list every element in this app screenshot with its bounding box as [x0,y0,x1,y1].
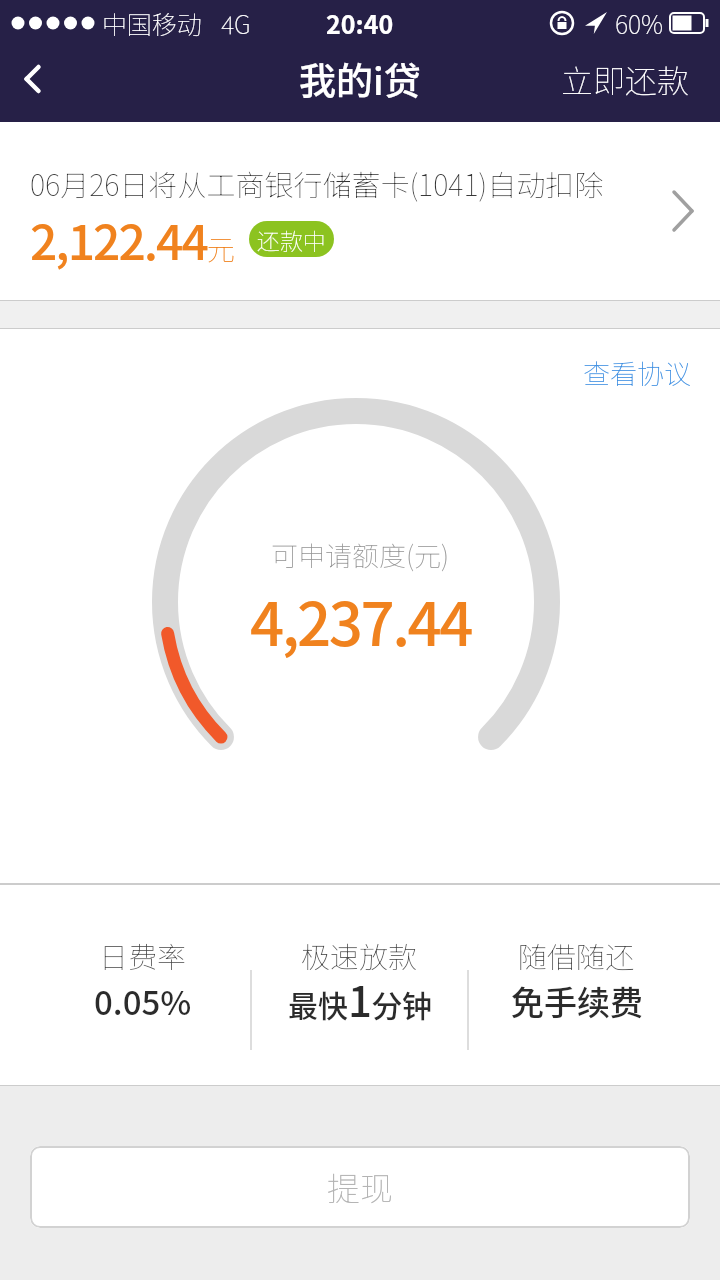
button[interactable] [0,51,64,107]
staticText: 可申请额度(元) [271,535,450,574]
button[interactable]: 查看协议 [583,329,720,392]
staticText: 免手续费 [511,977,643,1025]
staticText: 4G [221,5,251,41]
staticText: 日费率 [99,934,187,976]
staticText: 0.05% [94,977,192,1025]
button[interactable]: 立即还款 [531,44,720,114]
staticText: 还款中 [257,223,326,256]
button[interactable]: 06月26日将从工商银行储蓄卡(1041)自动扣除 [0,122,720,300]
staticText: 60% [615,5,664,41]
staticText: 2,122.44元 [30,204,235,274]
staticText: 立即还款 [561,56,690,102]
staticText: 随借随还 [518,934,635,976]
staticText: 4,237.44 [250,576,471,663]
staticText: 我的i贷 [299,52,421,106]
staticText: 极速放款 [301,934,418,976]
staticText: 提现 [327,1163,393,1211]
staticText: 查看协议 [583,353,691,392]
staticText: 06月26日将从工商银行储蓄卡(1041)自动扣除 [30,162,604,204]
button[interactable]: 提现 [30,1146,690,1228]
staticText: 最快1分钟 [288,968,432,1029]
staticText: 中国移动 [102,5,203,41]
staticText: 20:40 [326,5,394,41]
